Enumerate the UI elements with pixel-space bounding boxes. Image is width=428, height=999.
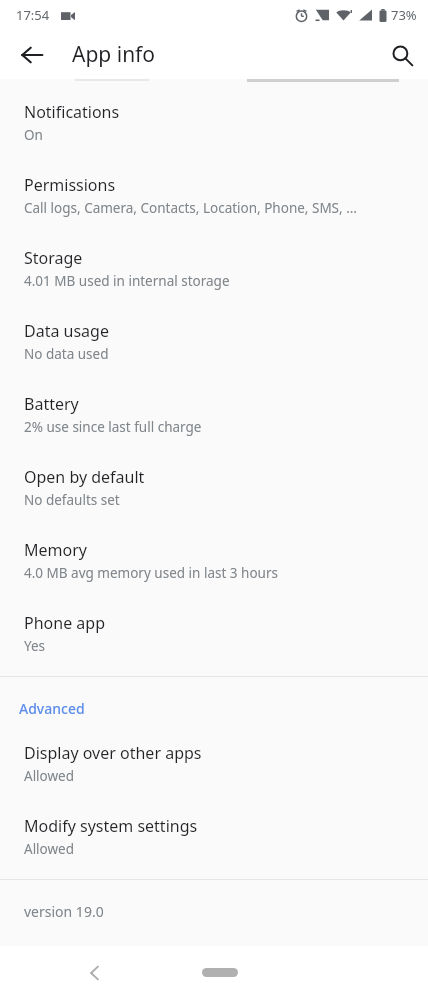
- button[interactable]: Advanced: [0, 697, 428, 720]
- button[interactable]: Storage: [0, 247, 428, 290]
- staticText: 4.0 MB avg memory used in last 3 hours: [24, 564, 278, 582]
- staticText: 73%: [391, 6, 417, 24]
- staticText: Call logs, Camera, Contacts, Location, P…: [24, 199, 357, 217]
- staticText: 4.01 MB used in internal storage: [24, 272, 230, 290]
- staticText: On: [24, 126, 43, 144]
- staticText: Storage: [24, 247, 83, 269]
- staticText: App info: [72, 40, 156, 69]
- staticText: Allowed: [24, 767, 75, 785]
- staticText: Open by default: [24, 466, 145, 488]
- staticText: No data used: [24, 345, 109, 363]
- staticText: Data usage: [24, 320, 109, 342]
- staticText: Display over other apps: [24, 742, 202, 764]
- staticText: Memory: [24, 539, 87, 561]
- staticText: No defaults set: [24, 491, 120, 509]
- staticText: Allowed: [24, 840, 75, 858]
- button[interactable]: Data usage: [0, 320, 428, 363]
- staticText: version 19.0: [24, 902, 104, 921]
- button[interactable]: Back: [8, 31, 56, 79]
- button[interactable]: Phone app: [0, 612, 428, 655]
- staticText: Advanced: [19, 699, 85, 718]
- button[interactable]: Search: [378, 31, 426, 79]
- button[interactable]: Permissions: [0, 174, 428, 217]
- staticText: Notifications: [24, 101, 120, 123]
- button[interactable]: Notifications: [0, 101, 428, 144]
- staticText: Battery: [24, 393, 79, 415]
- staticText: 2% use since last full charge: [24, 418, 202, 436]
- button[interactable]: Open by default: [0, 466, 428, 509]
- staticText: Phone app: [24, 612, 105, 634]
- staticText: Modify system settings: [24, 815, 198, 837]
- button[interactable]: Back: [71, 949, 119, 997]
- button[interactable]: Battery: [0, 393, 428, 436]
- button[interactable]: Modify system settings: [0, 815, 428, 858]
- button[interactable]: Memory: [0, 539, 428, 582]
- staticText: Yes: [24, 637, 46, 655]
- button[interactable]: Home: [202, 968, 238, 977]
- staticText: 17:54: [16, 6, 50, 24]
- staticText: Permissions: [24, 174, 116, 196]
- button[interactable]: Display over other apps: [0, 742, 428, 785]
